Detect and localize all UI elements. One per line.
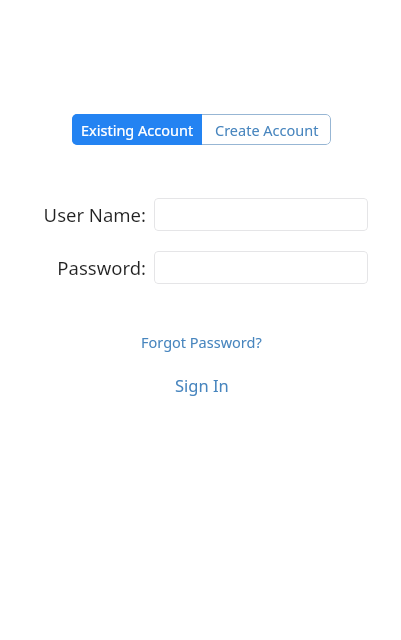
button[interactable]: Forgot Password? [131,326,272,358]
button[interactable]: Create Account [202,114,331,145]
staticText: Password: [0,255,146,280]
button[interactable]: Sign In [163,368,241,402]
button[interactable]: Existing Account [72,114,202,145]
button[interactable]: User Name input [154,198,368,231]
staticText: User Name: [0,202,146,227]
staticText: Create Account [215,120,319,140]
button[interactable]: Password input [154,251,368,284]
staticText: Forgot Password? [141,332,262,352]
staticText: Sign In [175,374,229,396]
staticText: Existing Account [81,120,194,140]
